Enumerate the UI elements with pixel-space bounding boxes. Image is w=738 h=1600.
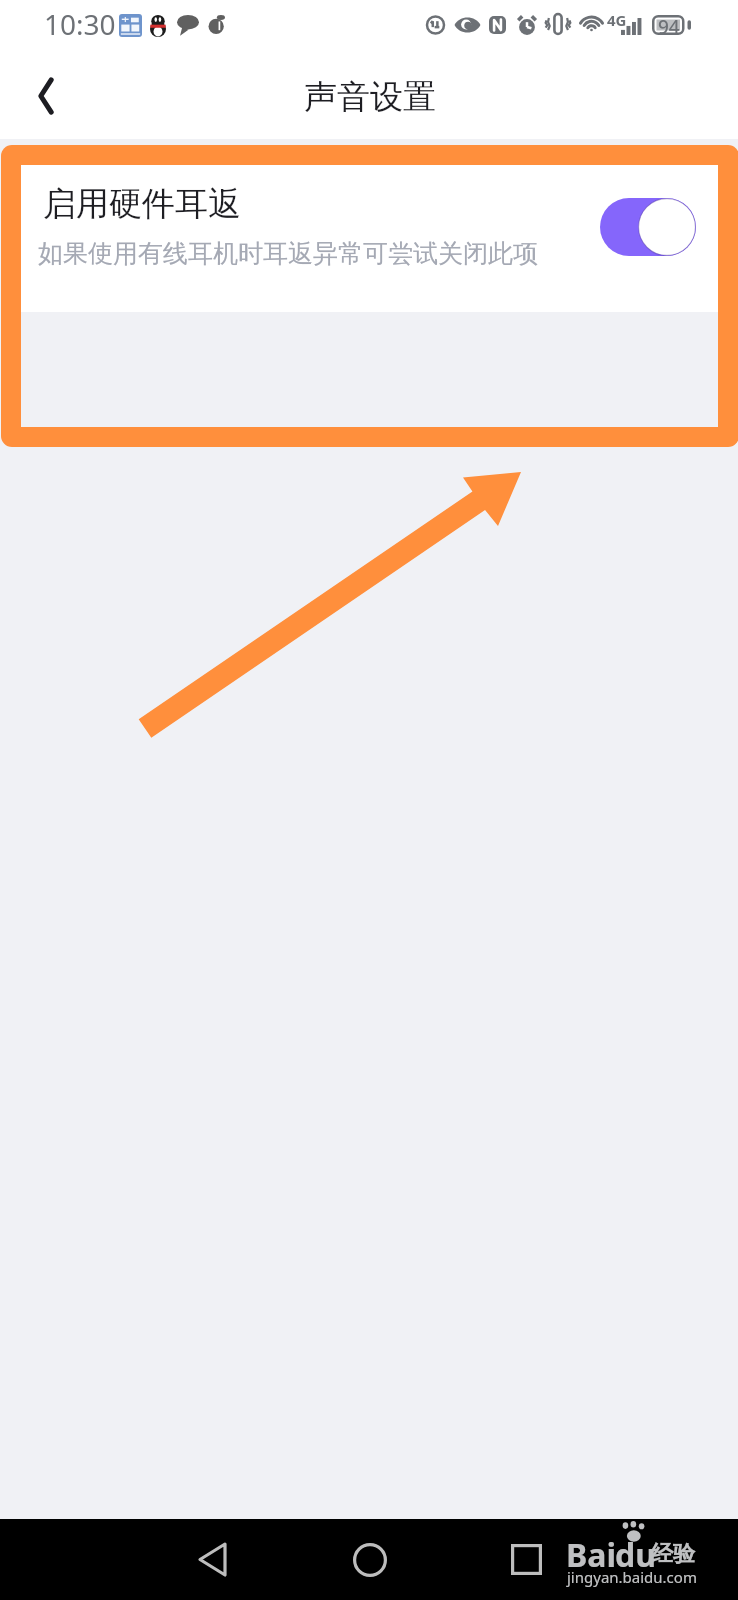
- staticText: 4G: [607, 10, 627, 30]
- staticText: 声音设置: [304, 76, 436, 118]
- staticText: du: [615, 1533, 657, 1577]
- staticText: 经验: [651, 1540, 695, 1568]
- staticText: Bai: [566, 1533, 617, 1577]
- staticText: 如果使用有线耳机时耳返异常可尝试关闭此项: [38, 238, 538, 269]
- button[interactable]: Back: [20, 70, 72, 122]
- staticText: jingyan.baidu.com: [567, 1567, 697, 1587]
- button[interactable]: Back: [186, 1533, 238, 1585]
- staticText: 10:30: [44, 5, 116, 43]
- staticText: 94: [658, 14, 680, 40]
- button[interactable]: 启用硬件耳返: [21, 165, 718, 312]
- staticText: 启用硬件耳返: [43, 183, 241, 225]
- button[interactable]: Home: [344, 1534, 396, 1586]
- button[interactable]: Recent apps: [500, 1533, 552, 1585]
- button[interactable]: Toggle hardware ear monitoring: [600, 198, 696, 256]
